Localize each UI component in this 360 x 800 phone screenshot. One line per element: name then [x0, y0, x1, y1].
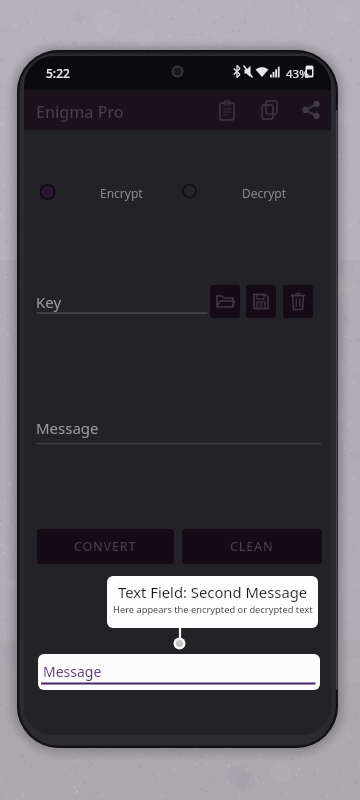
button[interactable]	[32, 176, 172, 208]
staticText: Text Field: Second Message	[118, 582, 308, 602]
staticText: Here appears the encrypted or decrypted …	[113, 603, 313, 616]
staticText: 5:22	[46, 65, 70, 81]
staticText: Key	[36, 292, 62, 312]
button[interactable]: CONVERT	[37, 529, 174, 564]
button[interactable]	[210, 285, 240, 318]
button[interactable]	[283, 285, 313, 318]
button[interactable]	[174, 176, 314, 208]
button[interactable]	[246, 285, 276, 318]
button[interactable]: CLEAN	[182, 529, 322, 564]
staticText: Message	[43, 662, 102, 681]
staticText: Encrypt	[100, 185, 143, 201]
staticText: Decrypt	[242, 185, 287, 201]
staticText: CLEAN	[230, 538, 274, 555]
staticText: Enigma Pro	[36, 101, 124, 123]
staticText: 43%	[286, 66, 309, 82]
button[interactable]: Message	[38, 654, 320, 690]
button[interactable]	[299, 94, 323, 126]
staticText: CONVERT	[74, 538, 137, 555]
staticText: Message	[36, 418, 99, 438]
button[interactable]	[257, 94, 281, 126]
button[interactable]	[215, 94, 239, 126]
